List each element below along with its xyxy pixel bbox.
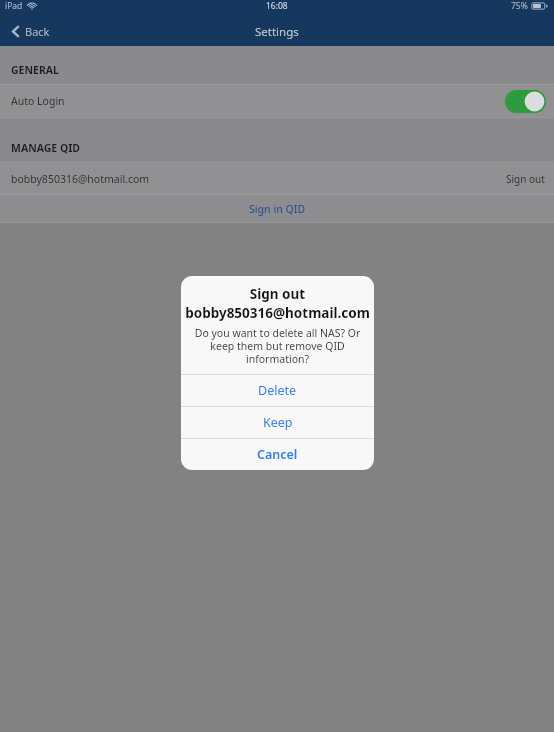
staticText: 75% <box>511 0 528 12</box>
staticText: Sign in QID <box>249 202 306 216</box>
staticText: Sign out <box>506 172 545 186</box>
staticText: MANAGE QID <box>11 141 81 155</box>
staticText: Cancel <box>257 446 298 463</box>
staticText: Delete <box>258 382 297 399</box>
staticText: Do you want to delete all NAS? Or keep t… <box>189 326 366 366</box>
button[interactable]: Sign in QID <box>0 195 554 222</box>
button[interactable]: Keep <box>181 407 374 438</box>
staticText: Keep <box>263 414 293 431</box>
staticText: Sign out <box>187 285 368 303</box>
button[interactable]: Back <box>0 20 62 43</box>
staticText: Auto Login <box>11 94 65 108</box>
button[interactable]: Delete <box>181 375 374 406</box>
staticText: Back <box>25 24 50 39</box>
staticText: bobby850316@hotmail.com <box>185 304 370 322</box>
button[interactable]: Auto Login <box>0 85 554 117</box>
staticText: iPad <box>5 0 23 12</box>
button[interactable]: Auto Login toggle <box>505 90 546 113</box>
staticText: bobby850316@hotmail.com <box>11 172 150 186</box>
button[interactable]: bobby850316@hotmail.com <box>0 163 554 194</box>
staticText: Settings <box>255 24 299 40</box>
staticText: GENERAL <box>11 63 59 77</box>
staticText: 16:08 <box>266 0 288 12</box>
button[interactable]: Cancel <box>181 439 374 470</box>
